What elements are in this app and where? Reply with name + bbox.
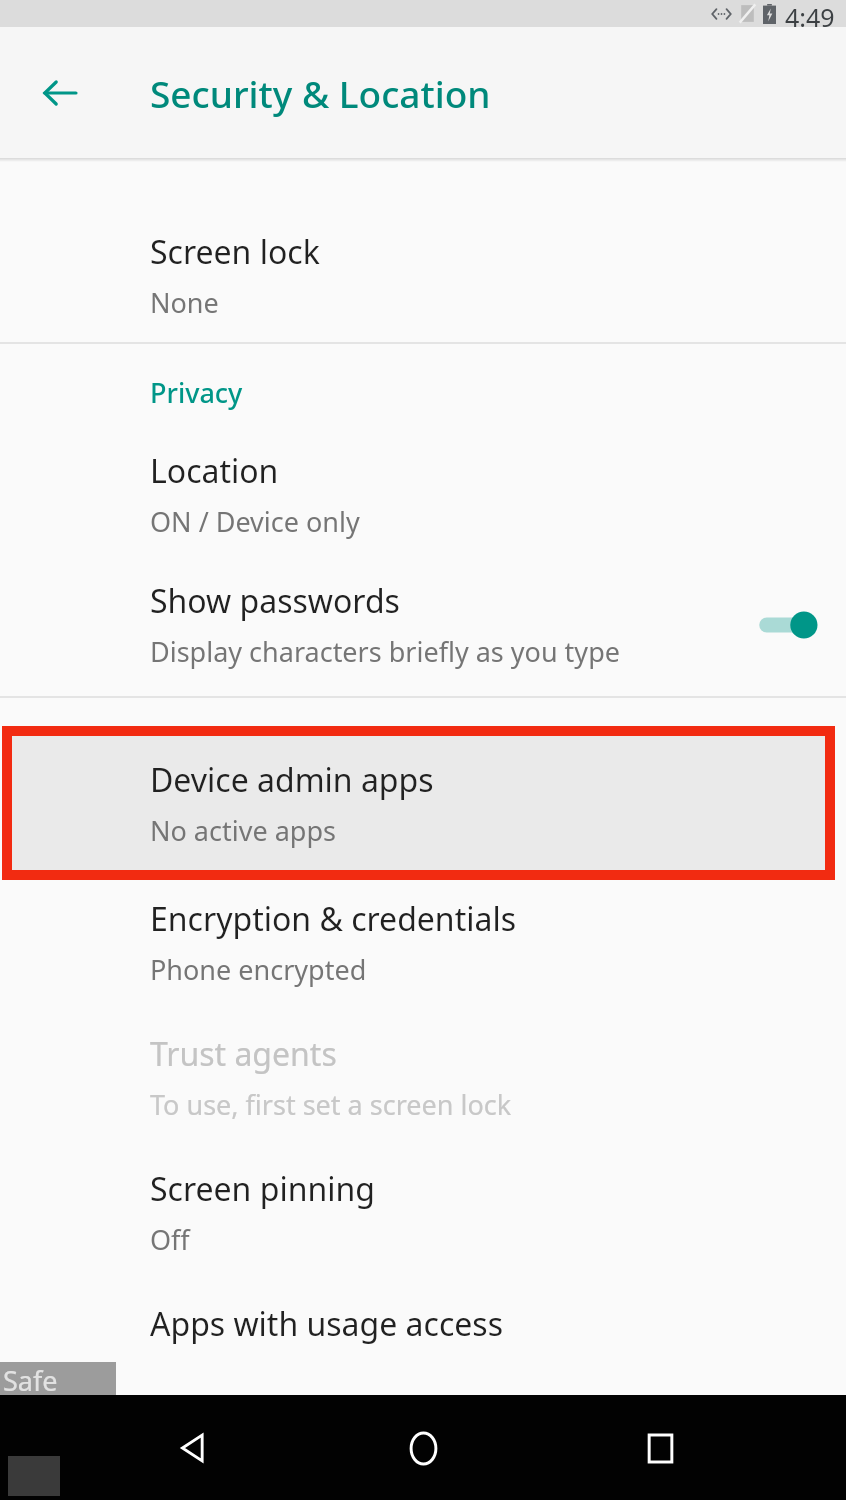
staticText: Device admin apps: [150, 758, 434, 802]
staticText: Show passwords: [150, 579, 400, 623]
staticText: Encryption & credentials: [150, 897, 516, 941]
button[interactable]: Home: [384, 1409, 462, 1487]
staticText: Screen lock: [150, 230, 320, 274]
staticText: Display characters briefly as you type: [150, 633, 620, 670]
staticText: 4:49: [785, 0, 835, 27]
button[interactable]: Back: [20, 53, 100, 133]
button[interactable]: Device admin apps: [2, 726, 835, 880]
button[interactable]: Back: [155, 1409, 233, 1487]
staticText: No active apps: [150, 812, 336, 849]
staticText: Safe mode: [3, 1362, 116, 1395]
button[interactable]: Apps with usage access: [0, 1302, 846, 1346]
staticText: Location: [150, 449, 279, 493]
staticText: Off: [150, 1221, 190, 1258]
staticText: Screen pinning: [150, 1167, 375, 1211]
button[interactable]: Location: [0, 449, 846, 540]
button[interactable]: Trust agents: [0, 1032, 846, 1123]
staticText: ON / Device only: [150, 503, 360, 540]
staticText: Security & Location: [150, 68, 491, 118]
staticText: Phone encrypted: [150, 951, 367, 988]
staticText: None: [150, 284, 219, 321]
staticText: Trust agents: [150, 1032, 337, 1076]
button[interactable]: Recent apps: [621, 1409, 699, 1487]
button[interactable]: Show passwords: [0, 579, 846, 670]
button[interactable]: Encryption & credentials: [0, 897, 846, 988]
staticText: Apps with usage access: [150, 1302, 503, 1346]
staticText: Privacy: [150, 374, 243, 411]
button[interactable]: Screen pinning: [0, 1167, 846, 1258]
button[interactable]: Screen lock: [0, 168, 846, 321]
staticText: To use, first set a screen lock: [150, 1086, 512, 1123]
